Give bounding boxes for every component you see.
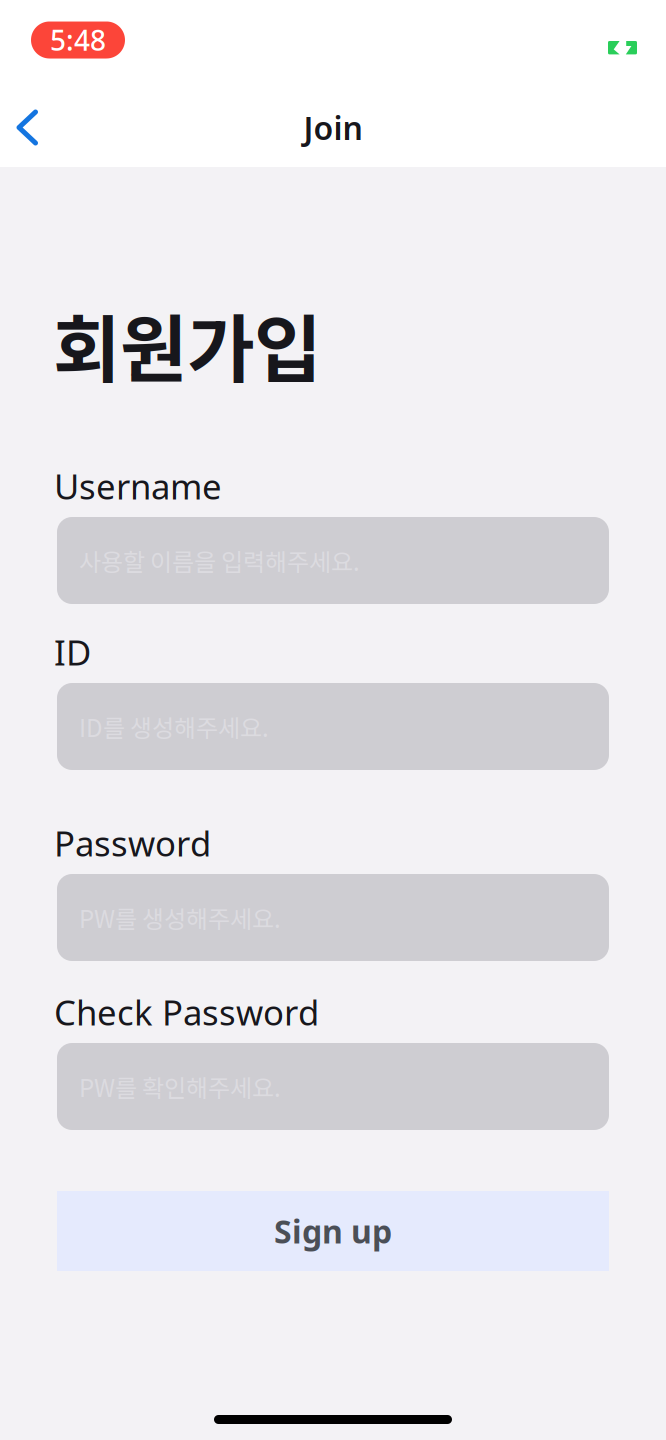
staticText: 회원가입 <box>53 291 321 397</box>
button[interactable]: Back <box>1 99 53 155</box>
staticText: PW를 생성해주세요. <box>79 900 281 935</box>
staticText: ID <box>54 629 91 675</box>
staticText: 사용할 이름을 입력해주세요. <box>79 543 360 578</box>
button[interactable]: Sign up <box>57 1191 609 1271</box>
button[interactable]: 사용할 이름을 입력해주세요. <box>57 517 609 604</box>
staticText: ID를 생성해주세요. <box>79 709 269 744</box>
staticText: Join <box>303 106 362 149</box>
staticText: Username <box>54 463 222 509</box>
staticText: Check Password <box>54 989 319 1035</box>
staticText: Sign up <box>274 1210 392 1252</box>
staticText: 5:48 <box>50 21 106 59</box>
staticText: PW를 확인해주세요. <box>79 1069 281 1104</box>
staticText: Password <box>54 820 211 866</box>
